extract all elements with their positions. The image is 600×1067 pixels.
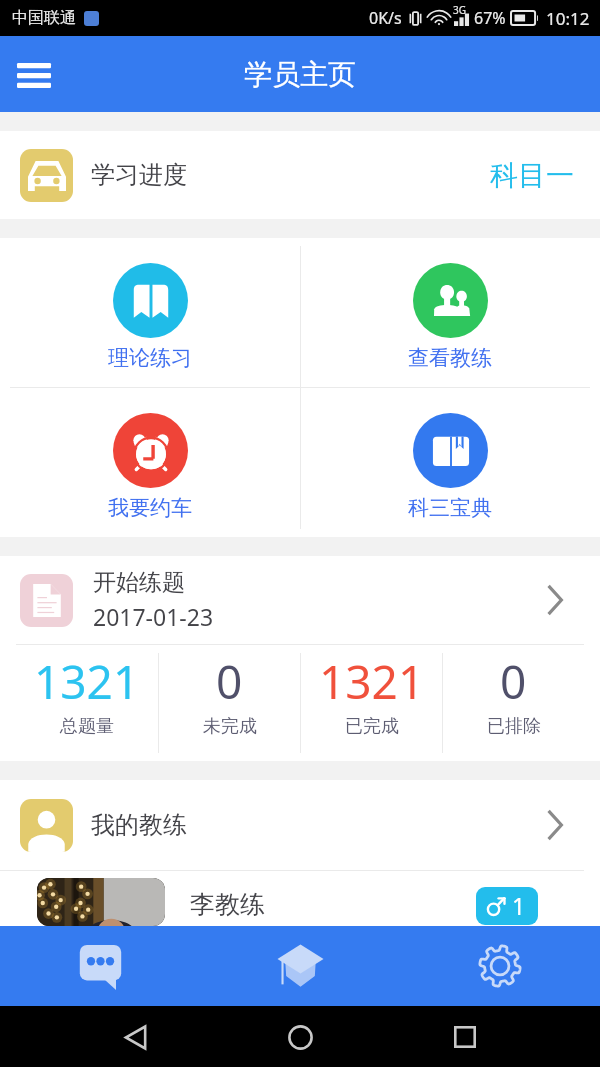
button[interactable]: 我要约车 [0, 388, 300, 537]
staticText: 1321 [319, 650, 425, 713]
staticText: 1321 [34, 650, 140, 713]
staticText: 67% [474, 7, 506, 29]
staticText: 10:12 [546, 7, 590, 30]
staticText: 学员主页 [244, 57, 356, 92]
staticText: 1 [512, 890, 526, 921]
staticText: 未完成 [203, 715, 257, 738]
staticText: 学习进度 [91, 160, 187, 190]
button[interactable]: 理论练习 [0, 238, 300, 387]
button[interactable]: 学习进度 [0, 131, 600, 219]
staticText: 科目一 [490, 158, 574, 193]
staticText: 我要约车 [108, 495, 192, 521]
button[interactable]: 0 [443, 645, 584, 761]
staticText: 李教练 [190, 889, 265, 920]
staticText: 查看教练 [408, 345, 492, 371]
button[interactable]: 李教练 [0, 871, 600, 926]
staticText: 科三宝典 [408, 495, 492, 521]
button[interactable]: Back [105, 1007, 165, 1067]
staticText: 2017-01-23 [93, 601, 214, 632]
staticText: 开始练题 [93, 568, 185, 597]
button[interactable]: Recents [435, 1007, 495, 1067]
button[interactable]: 查看教练 [300, 238, 600, 387]
staticText: 中国联通 [12, 8, 76, 28]
button[interactable]: Messages [0, 926, 200, 1006]
button[interactable]: 1321 [16, 645, 158, 761]
button[interactable]: Home [270, 1007, 330, 1067]
staticText: 总题量 [60, 715, 114, 738]
staticText: 0 [500, 650, 527, 713]
button[interactable]: 0 [159, 645, 300, 761]
staticText: 3G [453, 3, 466, 17]
staticText: 0 [216, 650, 243, 713]
button[interactable]: 科三宝典 [300, 388, 600, 537]
button[interactable]: 开始练题 [0, 556, 600, 644]
button[interactable]: 1321 [301, 645, 442, 761]
staticText: 已完成 [345, 715, 399, 738]
staticText: 已排除 [487, 715, 541, 738]
staticText: 我的教练 [91, 810, 187, 840]
button[interactable]: Learn [200, 926, 400, 1006]
staticText: 理论练习 [108, 345, 192, 371]
button[interactable]: 我的教练 [0, 780, 600, 870]
button[interactable]: Settings [400, 926, 600, 1006]
button[interactable]: Menu [0, 36, 68, 112]
staticText: 0K/s [369, 7, 402, 29]
